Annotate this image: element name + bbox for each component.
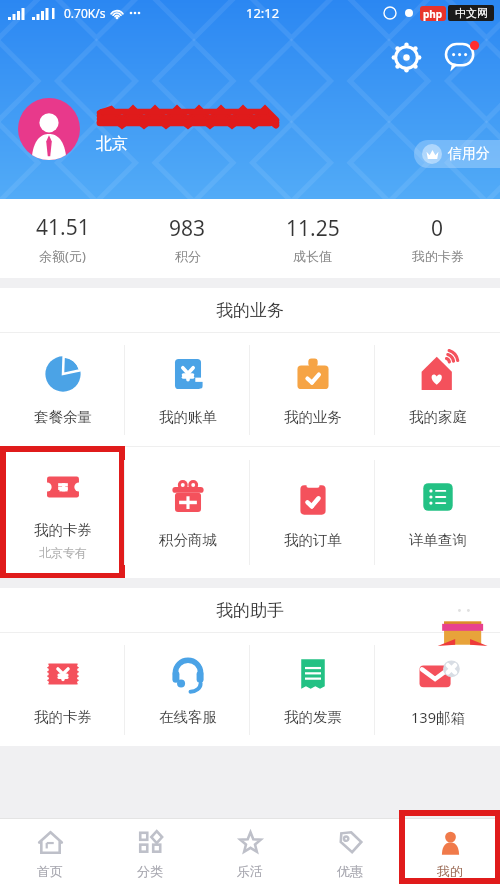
button[interactable]: 我的发票: [250, 633, 375, 746]
staticText: 41.51: [36, 213, 90, 242]
button[interactable]: 信用分: [422, 144, 490, 164]
staticText: 优惠: [337, 863, 363, 879]
staticText: php: [423, 7, 443, 21]
staticText: 我的卡券: [34, 521, 92, 539]
staticText: 我的业务: [284, 408, 342, 426]
staticText: 11.25: [286, 214, 340, 243]
button[interactable]: 11.25: [250, 199, 375, 278]
button[interactable]: 我的业务: [250, 333, 375, 446]
staticText: 成长值: [293, 248, 332, 264]
staticText: 积分商城: [159, 531, 217, 549]
button[interactable]: 优惠: [300, 819, 400, 889]
staticText: 详单查询: [409, 531, 467, 549]
button[interactable]: 我的账单: [125, 333, 250, 446]
staticText: 乐活: [237, 863, 263, 879]
staticText: 我的业务: [216, 300, 284, 321]
staticText: 我的卡券: [34, 708, 92, 726]
staticText: 我的助手: [216, 600, 284, 621]
staticText: 我的卡券: [412, 248, 464, 264]
staticText: 0: [431, 214, 444, 243]
button[interactable]: 我的卡券: [0, 633, 125, 746]
button[interactable]: Messages: [442, 36, 484, 78]
button[interactable]: 41.51: [0, 199, 125, 278]
staticText: 北京专有: [39, 545, 87, 560]
staticText: 首页: [37, 863, 63, 879]
staticText: 0.70K/s: [64, 5, 106, 21]
staticText: 我的发票: [284, 708, 342, 726]
button[interactable]: 我的家庭: [375, 333, 500, 446]
button[interactable]: 我的: [400, 819, 500, 889]
button[interactable]: 139邮箱: [375, 633, 500, 746]
button[interactable]: 0: [375, 199, 500, 278]
button[interactable]: 乐活: [200, 819, 300, 889]
button[interactable]: 积分商城: [125, 447, 250, 578]
staticText: 在线客服: [159, 708, 217, 726]
staticText: 北京: [96, 134, 128, 154]
staticText: 983: [169, 214, 206, 243]
staticText: 我的: [437, 863, 463, 879]
staticText: 我的订单: [284, 531, 342, 549]
button[interactable]: Avatar: [18, 98, 80, 160]
staticText: 12:12: [246, 4, 280, 22]
button[interactable]: 套餐余量: [0, 333, 125, 446]
button[interactable]: 首页: [0, 819, 100, 889]
button[interactable]: 在线客服: [125, 633, 250, 746]
staticText: 信用分: [448, 145, 490, 163]
staticText: 余额(元): [39, 247, 86, 265]
button[interactable]: 983: [125, 199, 250, 278]
button[interactable]: 详单查询: [375, 447, 500, 578]
staticText: 中文网: [455, 6, 488, 20]
button[interactable]: 分类: [100, 819, 200, 889]
staticText: 套餐余量: [34, 408, 92, 426]
staticText: 积分: [175, 248, 201, 264]
staticText: 我的家庭: [409, 408, 467, 426]
staticText: 分类: [137, 863, 163, 879]
staticText: 139邮箱: [411, 707, 465, 727]
button[interactable]: 我的卡券: [0, 447, 125, 578]
staticText: 我的账单: [159, 408, 217, 426]
button[interactable]: 我的订单: [250, 447, 375, 578]
button[interactable]: Promotion: [430, 596, 494, 654]
button[interactable]: Settings: [386, 37, 426, 77]
